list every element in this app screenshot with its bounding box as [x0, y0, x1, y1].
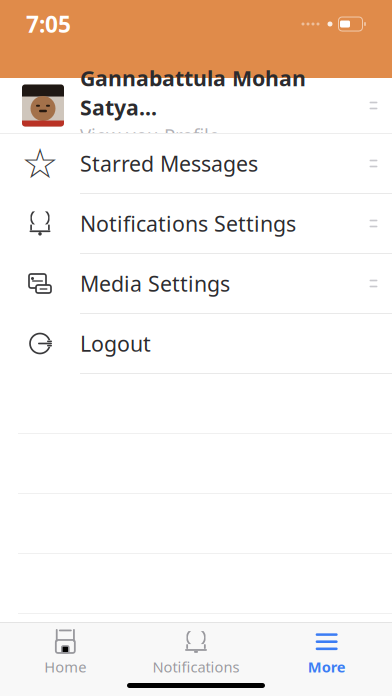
button[interactable]: Notifications	[131, 623, 261, 680]
staticText: Logout	[80, 329, 151, 358]
staticText: Home	[44, 657, 86, 676]
button[interactable]: More	[261, 623, 392, 681]
staticText: View you Profile	[80, 123, 220, 147]
staticText: Gannabattula Mohan Satya...	[80, 63, 306, 122]
staticText: Media Settings	[80, 269, 230, 298]
staticText: Starred Messages	[80, 149, 258, 178]
staticText: More	[308, 657, 346, 677]
staticText: 7:05	[26, 9, 71, 39]
button[interactable]: Notifications Settings	[0, 194, 392, 254]
staticText: Notifications	[152, 657, 239, 676]
button[interactable]: Media Settings	[0, 254, 392, 314]
button[interactable]: Gannabattula Mohan Satya...	[0, 78, 392, 134]
button[interactable]: Logout	[0, 314, 392, 374]
staticText: Notifications Settings	[80, 209, 296, 238]
button[interactable]: Home	[0, 623, 131, 680]
staticText: ☆	[21, 140, 58, 187]
button[interactable]: ☆	[0, 134, 392, 194]
